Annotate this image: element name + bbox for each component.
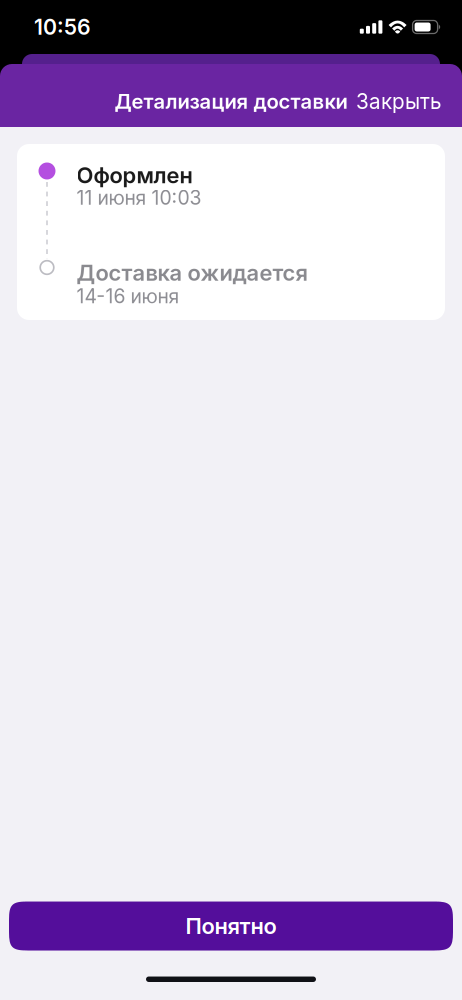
- button[interactable]: Понятно: [9, 901, 453, 950]
- button[interactable]: Закрыть: [345, 79, 452, 124]
- staticText: Оформлен: [76, 162, 192, 189]
- staticText: Понятно: [185, 913, 276, 939]
- staticText: 11 июня 10:03: [76, 186, 201, 209]
- staticText: 10:56: [34, 14, 91, 40]
- staticText: Детализация доставки: [114, 89, 347, 114]
- staticText: Доставка ожидается: [76, 259, 307, 286]
- staticText: 14-16 июня: [76, 284, 179, 308]
- staticText: Закрыть: [356, 89, 441, 114]
